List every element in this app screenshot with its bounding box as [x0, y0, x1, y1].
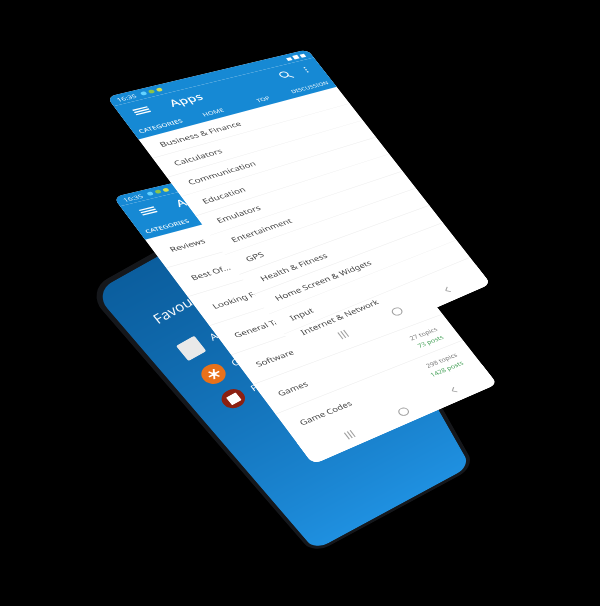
staticText: CATEGORIES: [143, 217, 191, 235]
staticText: Apps: [206, 320, 236, 343]
button[interactable]: Game Codes: [276, 340, 482, 443]
button[interactable]: Home Screen & Widgets: [254, 223, 456, 314]
staticText: 27 topics: [387, 299, 419, 315]
button[interactable]: Back: [429, 277, 464, 303]
button[interactable]: CATEGORIES: [128, 112, 192, 139]
staticText: Entertainment: [229, 216, 295, 244]
staticText: Emulators: [214, 203, 263, 225]
staticText: Business & Finance: [157, 119, 244, 149]
button[interactable]: Best Of...: [166, 212, 382, 297]
button[interactable]: Looking For...: [188, 237, 402, 326]
button[interactable]: Health & Fitness: [239, 205, 443, 294]
button[interactable]: HOME: [182, 99, 243, 125]
button[interactable]: Software: [231, 288, 443, 384]
button[interactable]: Business & Finance: [138, 87, 350, 158]
button[interactable]: Education: [181, 137, 389, 216]
staticText: 16:35: [121, 192, 145, 203]
button[interactable]: Recents: [329, 420, 369, 449]
button[interactable]: Emulators: [196, 154, 403, 235]
staticText: CATEGORIES: [136, 117, 185, 135]
staticText: Games: [275, 379, 310, 398]
button[interactable]: TOP: [240, 187, 298, 212]
button[interactable]: DISCUSSION: [282, 75, 337, 99]
staticText: 44 topics: [346, 247, 378, 262]
button[interactable]: Calculators: [153, 104, 363, 177]
staticText: Apps: [172, 190, 213, 210]
button[interactable]: GPS: [225, 188, 429, 274]
staticText: Apps: [166, 90, 207, 110]
button[interactable]: More options: [295, 63, 317, 76]
staticText: 27 topics: [407, 325, 439, 342]
staticText: DISCUSSION: [289, 79, 330, 95]
staticText: Calculators: [171, 146, 225, 168]
button[interactable]: Home: [384, 398, 422, 426]
staticText: Internet & Network: [298, 297, 380, 337]
staticText: GPS: [243, 249, 267, 264]
staticText: 1428 posts: [428, 359, 465, 378]
staticText: Home Screen & Widgets: [272, 258, 374, 303]
staticText: Favourites: [149, 277, 223, 328]
button[interactable]: Communication: [167, 120, 376, 196]
staticText: Input: [287, 305, 316, 323]
button[interactable]: Recents: [323, 320, 362, 349]
button[interactable]: Menu: [133, 202, 163, 220]
staticText: 16:35: [115, 92, 139, 103]
button[interactable]: TOP: [233, 86, 291, 112]
staticText: Communication: [185, 159, 258, 187]
staticText: Education: [200, 184, 248, 206]
staticText: Health & Fitness: [258, 251, 329, 283]
staticText: HOME: [207, 206, 233, 218]
button[interactable]: General Talk: [209, 263, 422, 355]
staticText: 73 posts: [395, 307, 425, 322]
staticText: Game Codes: [297, 398, 354, 427]
button[interactable]: Input: [269, 240, 470, 334]
button[interactable]: Games: [253, 314, 463, 414]
button[interactable]: CATEGORIES: [135, 212, 199, 240]
button[interactable]: HOME: [189, 199, 250, 225]
button[interactable]: Search: [272, 67, 298, 83]
button[interactable]: Menu: [127, 102, 156, 120]
staticText: Reviews: [167, 236, 208, 254]
button[interactable]: Back: [436, 377, 471, 403]
button[interactable]: Reviews: [145, 187, 363, 268]
button[interactable]: Entertainment: [210, 171, 416, 255]
staticText: 120 posts: [350, 255, 385, 271]
staticText: 298 topics: [424, 351, 459, 369]
staticText: 73 posts: [415, 333, 445, 349]
staticText: Posts: [248, 372, 277, 393]
button[interactable]: Internet & Network: [284, 257, 476, 342]
staticText: Best Of...: [188, 263, 233, 282]
staticText: Software: [253, 347, 296, 369]
staticText: Games: [228, 342, 266, 369]
staticText: General Talk: [231, 314, 288, 340]
staticText: HOME: [200, 106, 226, 118]
button[interactable]: Home: [378, 297, 415, 325]
staticText: TOP: [254, 94, 272, 104]
staticText: Looking For...: [210, 285, 271, 311]
